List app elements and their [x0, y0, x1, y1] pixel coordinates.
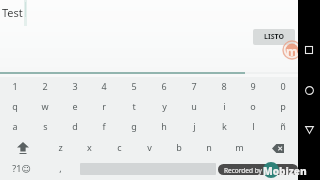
staticText: w	[41, 100, 49, 112]
button[interactable]: 8	[209, 76, 239, 96]
button[interactable]: z	[45, 137, 75, 157]
button[interactable]: 6	[149, 76, 179, 96]
button[interactable]: k	[209, 116, 239, 136]
staticText: t	[132, 100, 136, 112]
button[interactable]: s	[30, 116, 60, 136]
button[interactable]: g	[119, 116, 149, 136]
button[interactable]: t	[119, 96, 149, 116]
button[interactable]: i	[209, 96, 239, 116]
staticText: j	[193, 120, 196, 132]
staticText: e	[72, 100, 78, 112]
button[interactable]: 2	[30, 76, 60, 96]
button[interactable]: q	[0, 96, 30, 116]
button[interactable]: e	[60, 96, 90, 116]
button[interactable]: 7	[179, 76, 209, 96]
button[interactable]: r	[89, 96, 119, 116]
staticText: a	[12, 120, 18, 132]
button[interactable]: .	[218, 157, 244, 179]
staticText: q	[12, 100, 18, 112]
staticText: m	[235, 141, 244, 153]
button[interactable]: ?1☺	[2, 157, 40, 179]
staticText: 1	[12, 80, 18, 92]
staticText: p	[280, 100, 286, 112]
button[interactable]: ,	[47, 157, 73, 179]
button[interactable]: 4	[89, 76, 119, 96]
button[interactable]: Backspace	[255, 138, 300, 158]
staticText: 8	[221, 80, 227, 92]
staticText: k	[222, 120, 227, 132]
staticText: Test	[2, 5, 23, 20]
button[interactable]: 9	[238, 76, 268, 96]
staticText: d	[72, 120, 78, 132]
staticText: x	[87, 141, 92, 153]
staticText: 2	[42, 80, 48, 92]
button[interactable]: h	[149, 116, 179, 136]
button[interactable]: x	[74, 137, 104, 157]
button[interactable]: p	[268, 96, 298, 116]
staticText: g	[131, 120, 137, 132]
staticText: c	[117, 141, 122, 153]
button[interactable]: m	[224, 137, 254, 157]
staticText: y	[162, 100, 167, 112]
button[interactable]: Recents	[298, 40, 320, 60]
button[interactable]: Home	[298, 80, 320, 100]
staticText: 5	[131, 80, 137, 92]
button[interactable]: u	[179, 96, 209, 116]
button[interactable]: 0	[268, 76, 298, 96]
button[interactable]: b	[164, 137, 194, 157]
staticText: b	[176, 141, 182, 153]
button[interactable]: Enter	[247, 157, 297, 179]
staticText: l	[252, 120, 255, 132]
staticText: 0	[280, 80, 286, 92]
staticText: i	[223, 100, 226, 112]
button[interactable]: Back	[298, 120, 320, 140]
staticText: r	[102, 100, 106, 112]
button[interactable]: v	[134, 137, 164, 157]
staticText: ñ	[280, 120, 286, 132]
staticText: u	[191, 100, 197, 112]
staticText: Mobizen	[263, 164, 307, 178]
staticText: 3	[72, 80, 78, 92]
staticText: 7	[191, 80, 197, 92]
staticText: Recorded by	[224, 166, 262, 175]
button[interactable]: 1	[0, 76, 30, 96]
button[interactable]: w	[30, 96, 60, 116]
button[interactable]: ñ	[268, 116, 298, 136]
staticText: 6	[161, 80, 167, 92]
button[interactable]: Shift	[0, 138, 45, 158]
button[interactable]: j	[179, 116, 209, 136]
button[interactable]: a	[0, 116, 30, 136]
button[interactable]: c	[104, 137, 134, 157]
staticText: o	[250, 100, 256, 112]
staticText: ,	[59, 162, 62, 174]
button[interactable]: f	[89, 116, 119, 136]
button[interactable]: 5	[119, 76, 149, 96]
staticText: h	[161, 120, 167, 132]
staticText: m	[286, 43, 298, 59]
button[interactable]: y	[149, 96, 179, 116]
staticText: f	[102, 120, 106, 132]
staticText: 9	[250, 80, 256, 92]
button[interactable]: 3	[60, 76, 90, 96]
button[interactable]: n	[194, 137, 224, 157]
staticText: v	[147, 141, 152, 153]
staticText: z	[58, 141, 63, 153]
button[interactable]: d	[60, 116, 90, 136]
staticText: s	[43, 120, 48, 132]
button[interactable]: LISTO	[253, 29, 295, 45]
staticText: 4	[101, 80, 107, 92]
button[interactable]: l	[238, 116, 268, 136]
staticText: n	[206, 141, 212, 153]
staticText: LISTO	[264, 32, 284, 42]
staticText: ?1☺	[12, 162, 31, 174]
button[interactable]: o	[238, 96, 268, 116]
staticText: .	[230, 162, 233, 174]
